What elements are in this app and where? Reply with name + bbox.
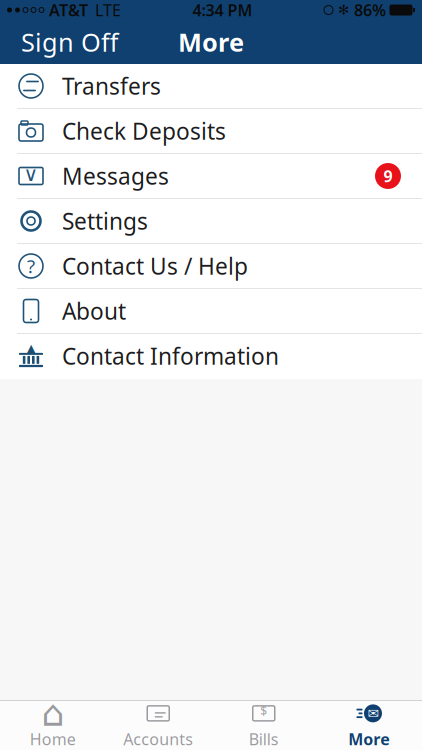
button[interactable]: ⌂ bbox=[0, 701, 105, 750]
button[interactable]: Settings bbox=[0, 199, 422, 244]
staticText: ? bbox=[27, 254, 35, 278]
button[interactable]: ✉ bbox=[316, 701, 422, 750]
staticText: About bbox=[62, 296, 126, 326]
button[interactable]: $ bbox=[211, 701, 316, 750]
button[interactable]: ? bbox=[0, 244, 422, 289]
staticText: ✻ bbox=[338, 2, 349, 17]
staticText: Check Deposits bbox=[62, 116, 226, 146]
button[interactable]: ▲ bbox=[0, 334, 422, 379]
staticText: AT&T bbox=[49, 0, 88, 21]
staticText: 4:34 PM bbox=[192, 0, 252, 21]
staticText: Messages bbox=[62, 161, 169, 191]
staticText: 9 bbox=[383, 165, 392, 187]
button[interactable]: About bbox=[0, 289, 422, 334]
staticText: More bbox=[178, 25, 244, 59]
staticText: ∨ bbox=[23, 163, 38, 185]
button[interactable]: Check Deposits bbox=[0, 109, 422, 154]
button[interactable]: Accounts bbox=[105, 701, 211, 750]
staticText: 86% bbox=[354, 0, 386, 21]
staticText: Contact Us / Help bbox=[62, 251, 248, 281]
staticText: Bills bbox=[249, 728, 279, 750]
staticText: Sign Off bbox=[21, 25, 118, 59]
staticText: $ bbox=[260, 703, 267, 719]
staticText: ✉ bbox=[367, 706, 378, 721]
button[interactable]: Sign Off bbox=[17, 19, 122, 65]
staticText: Accounts bbox=[123, 728, 193, 750]
staticText: Settings bbox=[62, 206, 148, 236]
staticText: Transfers bbox=[62, 71, 161, 101]
staticText: More bbox=[348, 728, 390, 750]
button[interactable]: ∨ bbox=[0, 154, 422, 199]
staticText: LTE bbox=[95, 0, 121, 21]
staticText: Home bbox=[30, 728, 76, 750]
staticText: Contact Information bbox=[62, 341, 279, 371]
staticText: ⌂ bbox=[41, 693, 64, 734]
button[interactable]: ◀ bbox=[0, 64, 422, 109]
staticText: ▲ bbox=[26, 342, 35, 355]
